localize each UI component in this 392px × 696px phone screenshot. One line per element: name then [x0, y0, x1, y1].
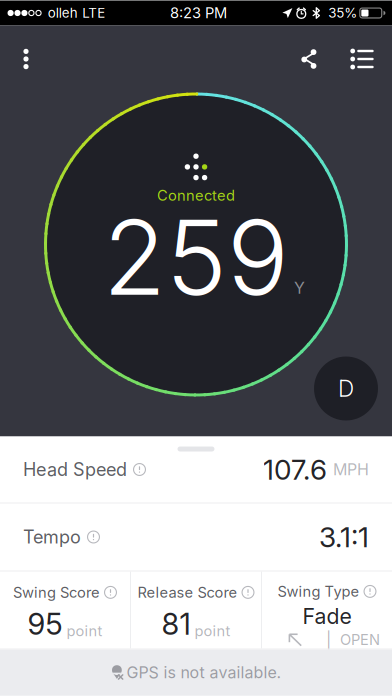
button[interactable]: Head Speed: [0, 436, 392, 502]
staticText: 35%: [328, 5, 357, 21]
staticText: 107.6: [263, 453, 327, 486]
staticText: Swing Type: [277, 582, 359, 600]
button[interactable]: More options: [2, 36, 50, 82]
staticText: LTE: [82, 5, 105, 21]
button[interactable]: Share: [286, 36, 332, 82]
button[interactable]: Swing Type: [262, 571, 392, 648]
staticText: 95: [27, 606, 62, 642]
button[interactable]: Club: Driver: [314, 356, 378, 420]
staticText: Head Speed: [23, 459, 127, 480]
staticText: olleh: [48, 5, 78, 21]
button[interactable]: Tempo: [0, 503, 392, 570]
button[interactable]: History: [338, 36, 386, 82]
button[interactable]: Release Score: [131, 571, 261, 648]
staticText: MPH: [333, 460, 369, 479]
staticText: Y: [294, 278, 305, 298]
button[interactable]: Swing Score: [0, 571, 130, 648]
staticText: point: [194, 622, 230, 640]
staticText: |: [326, 630, 331, 649]
staticText: 3.1:1: [319, 520, 369, 554]
staticText: Connected: [157, 187, 235, 204]
staticText: Fade: [302, 603, 351, 629]
staticText: GPS is not available.: [126, 663, 281, 682]
staticText: Tempo: [23, 526, 81, 548]
staticText: point: [66, 622, 102, 640]
staticText: 259: [103, 195, 289, 320]
staticText: Swing Score: [13, 583, 100, 601]
staticText: 81: [161, 606, 190, 642]
staticText: OPEN: [340, 631, 380, 649]
staticText: D: [338, 375, 354, 402]
staticText: Release Score: [137, 583, 237, 601]
staticText: 8:23 PM: [170, 4, 227, 22]
